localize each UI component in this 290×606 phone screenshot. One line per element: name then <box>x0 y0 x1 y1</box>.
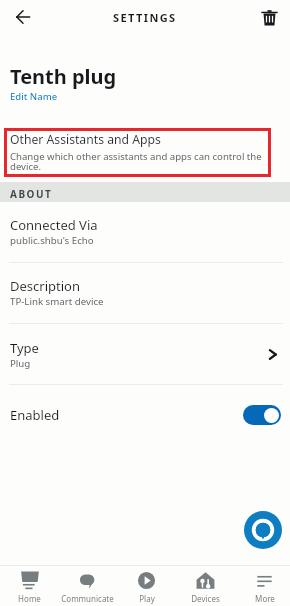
button[interactable]: Communicate <box>60 567 115 606</box>
staticText: More <box>255 593 275 604</box>
button[interactable]: Other Assistants and Apps <box>4 128 271 177</box>
staticText: Type <box>10 339 39 357</box>
staticText: Devices <box>191 593 220 604</box>
staticText: Connected Via <box>10 216 98 234</box>
button[interactable]: Delete <box>257 5 281 29</box>
staticText: ABOUT <box>10 187 53 201</box>
button[interactable]: Play <box>119 567 174 606</box>
staticText: TP-Link smart device <box>10 295 104 308</box>
button[interactable]: Back <box>11 5 35 29</box>
staticText: Communicate <box>61 593 114 604</box>
button[interactable]: Edit Name <box>10 90 58 103</box>
staticText: Description <box>10 277 80 295</box>
staticText: Other Assistants and Apps <box>10 131 161 148</box>
button[interactable]: More <box>237 567 290 606</box>
staticText: Tenth plug <box>10 63 117 90</box>
staticText: Change which other assistants and apps c… <box>10 150 262 172</box>
button[interactable]: Home <box>2 567 57 606</box>
staticText: Home <box>18 593 41 604</box>
staticText: public.shbu's Echo <box>10 234 94 247</box>
staticText: Plug <box>10 357 31 370</box>
button[interactable]: Devices <box>178 567 233 606</box>
button[interactable]: Enabled <box>0 395 290 436</box>
button[interactable]: Connected Via <box>0 214 290 258</box>
staticText: Enabled <box>10 406 60 424</box>
button[interactable]: Description <box>0 275 290 319</box>
staticText: Play <box>139 593 155 604</box>
button[interactable]: Alexa <box>244 511 282 549</box>
button[interactable]: Type <box>0 337 290 381</box>
staticText: SETTINGS <box>113 10 177 25</box>
